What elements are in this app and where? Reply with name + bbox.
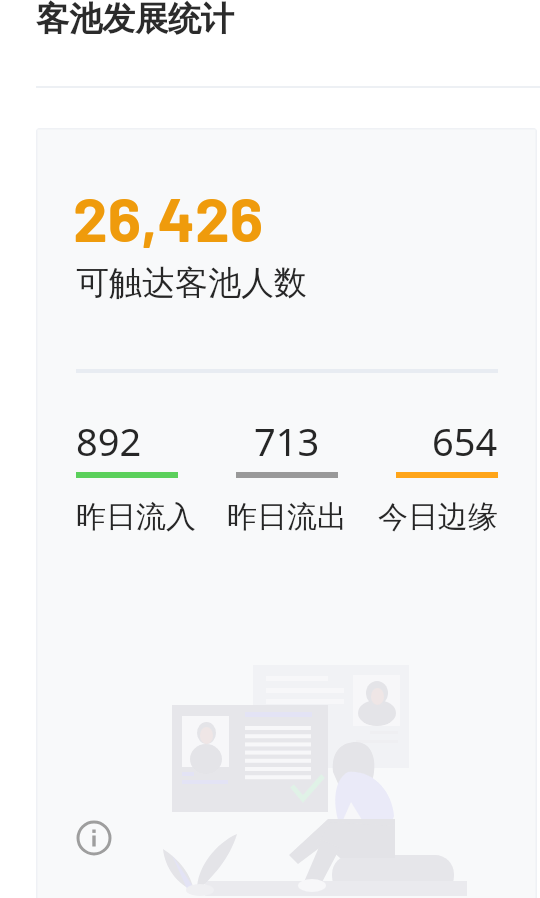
staticText: 今日边缘 — [378, 498, 498, 536]
staticText: 昨日流入 — [76, 498, 196, 536]
staticText: 654 — [432, 415, 498, 467]
staticText: 昨日流出 — [227, 498, 347, 536]
staticText: 可触达客池人数 — [76, 262, 307, 304]
button[interactable]: 713 — [216, 415, 357, 536]
button[interactable]: 654 — [357, 415, 498, 536]
staticText: 713 — [254, 415, 320, 467]
button[interactable]: 892 — [76, 415, 216, 536]
staticText: 26,426 — [73, 180, 263, 254]
button[interactable]: Info — [76, 820, 112, 856]
staticText: 客池发展统计 — [36, 0, 234, 40]
staticText: 892 — [76, 415, 142, 467]
button[interactable]: 26,426 — [76, 180, 498, 304]
